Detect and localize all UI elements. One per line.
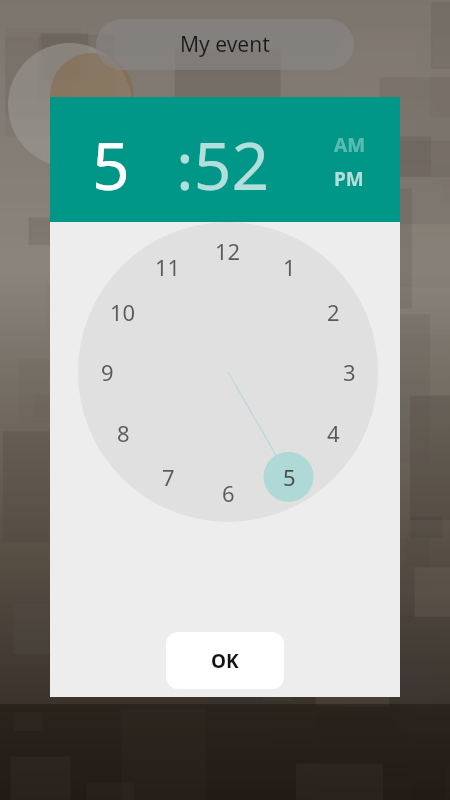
staticText: AM bbox=[334, 132, 366, 158]
staticText: 6 bbox=[222, 478, 235, 508]
button[interactable]: 5 bbox=[92, 119, 130, 209]
staticText: 9 bbox=[101, 357, 114, 387]
staticText: OK bbox=[211, 648, 239, 674]
staticText: 1 bbox=[283, 252, 296, 282]
staticText: 5 bbox=[92, 119, 130, 209]
staticText: 11 bbox=[155, 252, 181, 282]
staticText: 8 bbox=[117, 418, 130, 448]
button[interactable]: Clock dial, 5 o'clock bbox=[50, 222, 400, 637]
staticText: 7 bbox=[162, 462, 175, 492]
button[interactable]: PM bbox=[334, 166, 364, 192]
staticText: 2 bbox=[327, 297, 340, 327]
button[interactable]: AM bbox=[334, 132, 366, 158]
button[interactable]: OK bbox=[166, 632, 284, 689]
staticText: 4 bbox=[327, 418, 340, 448]
staticText: PM bbox=[334, 166, 364, 192]
button[interactable]: My event bbox=[96, 19, 354, 70]
staticText: 3 bbox=[343, 357, 356, 387]
staticText: :52 bbox=[176, 119, 270, 209]
staticText: 5 bbox=[283, 462, 296, 492]
staticText: My event bbox=[180, 30, 270, 59]
button[interactable]: :52 bbox=[176, 119, 270, 209]
staticText: 10 bbox=[110, 297, 136, 327]
staticText: 12 bbox=[215, 236, 241, 266]
